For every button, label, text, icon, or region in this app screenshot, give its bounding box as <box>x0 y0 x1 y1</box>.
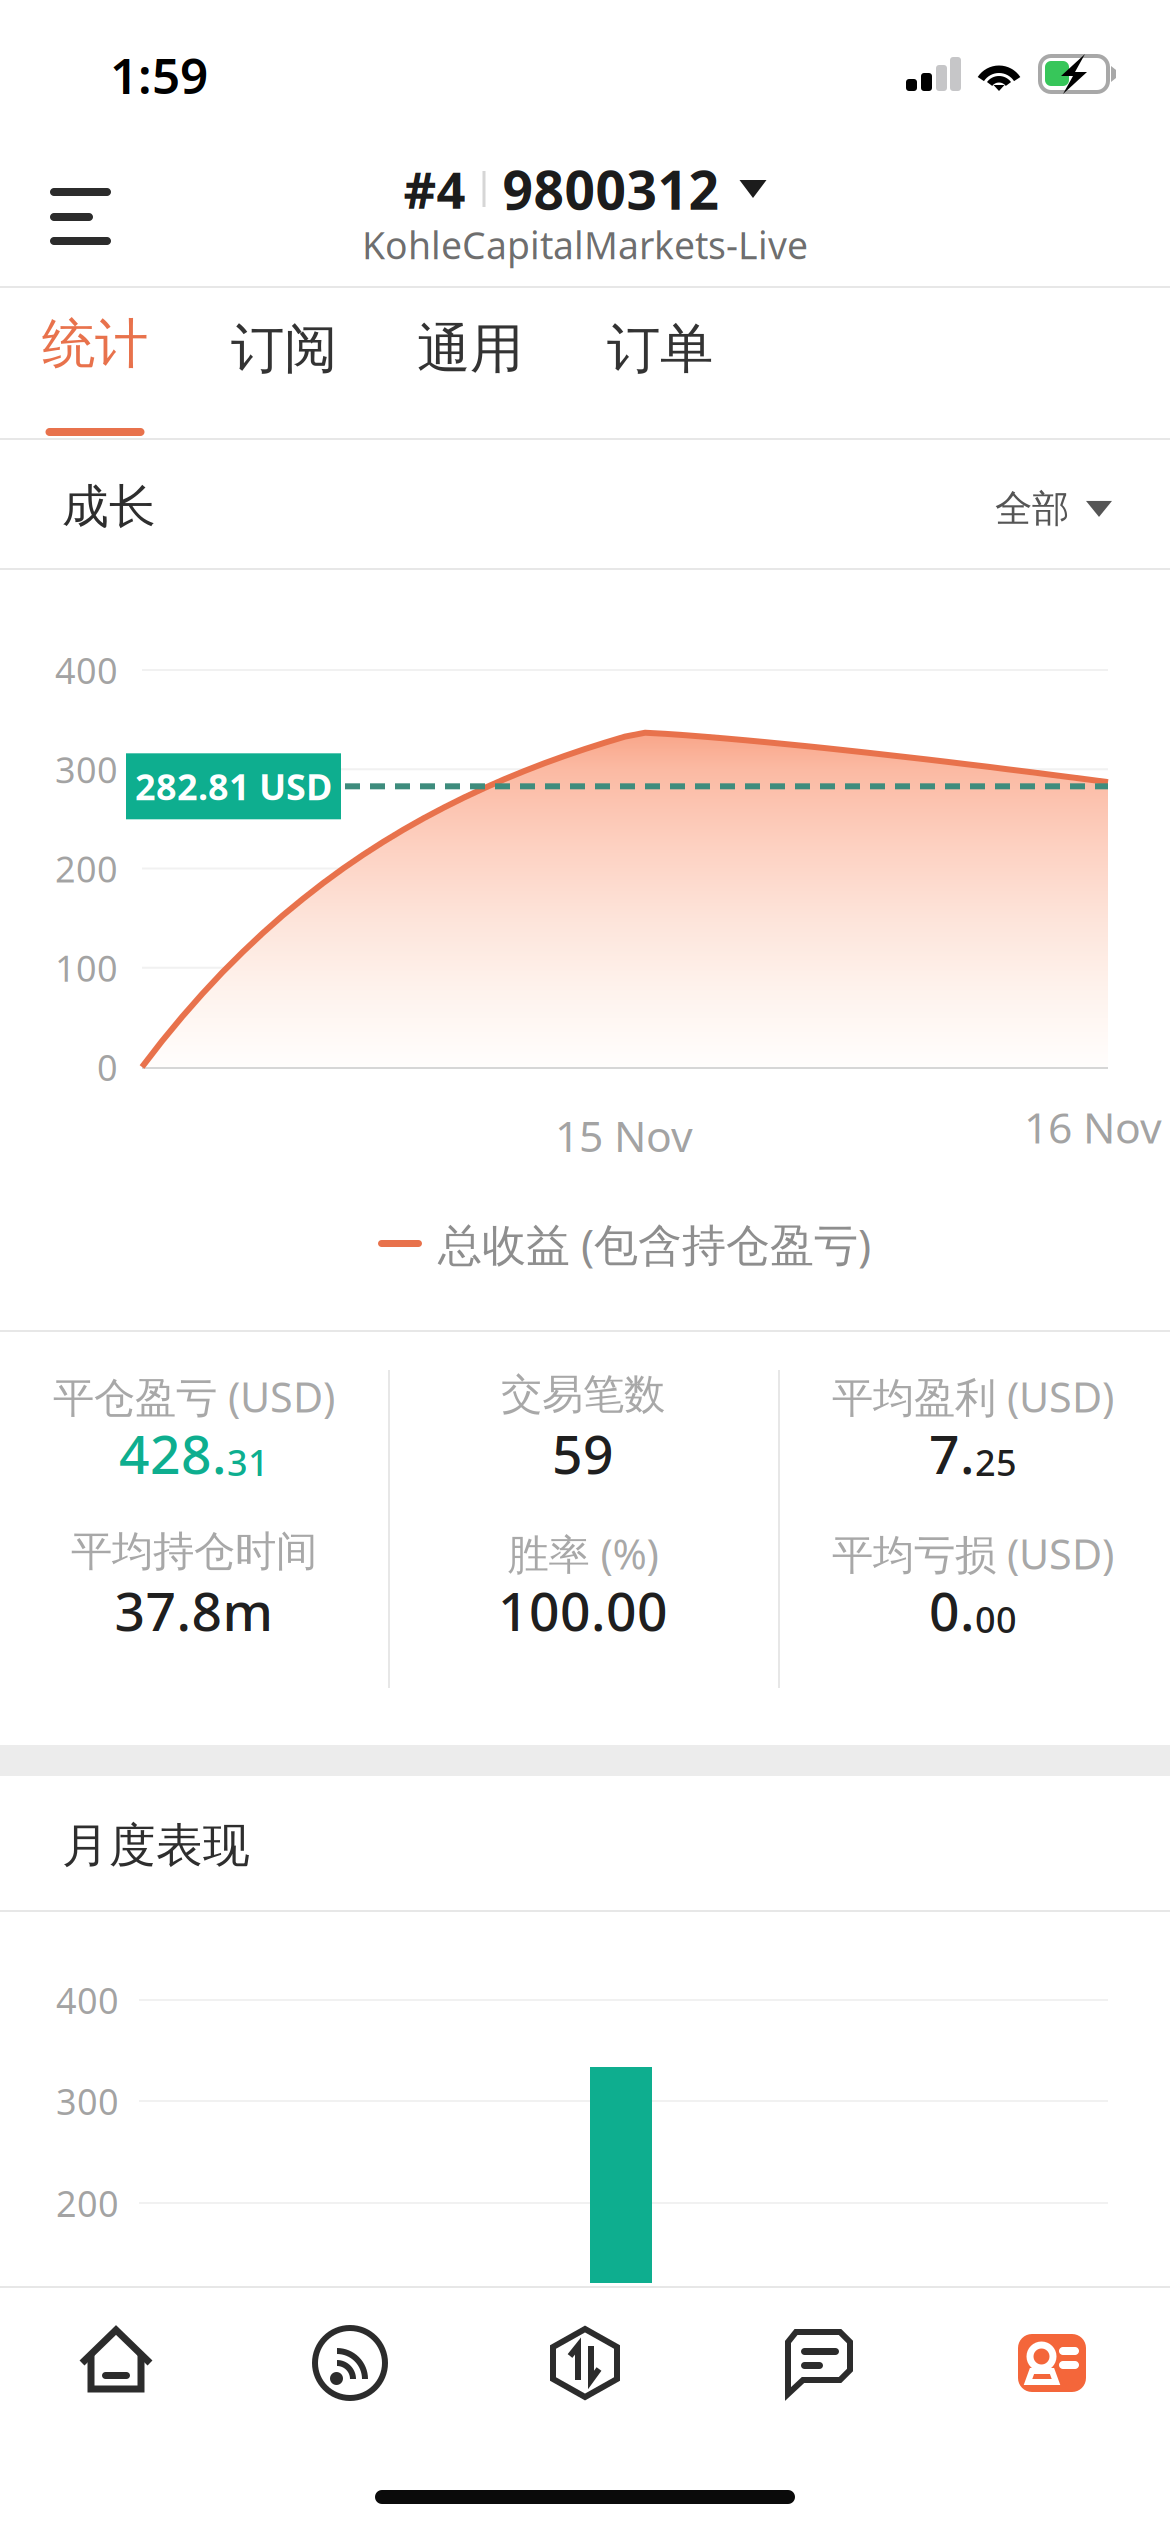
staticText: 订阅 <box>231 316 337 382</box>
staticText: KohleCapitalMarkets-Live <box>362 220 808 270</box>
button[interactable]: Account <box>1014 2326 1090 2400</box>
button[interactable]: 通用 <box>390 288 550 440</box>
staticText: 成长 <box>62 478 156 535</box>
button[interactable]: 全部 <box>995 474 1112 544</box>
staticText: 428. <box>119 1418 227 1489</box>
button[interactable]: 统计 <box>15 288 175 440</box>
staticText: 25 <box>975 1438 1017 1486</box>
staticText: 平仓盈亏 (USD) <box>53 1369 335 1424</box>
staticText: 37.8m <box>114 1575 273 1646</box>
staticText: 200 <box>56 2179 119 2227</box>
staticText: 统计 <box>42 311 148 377</box>
staticText: 9800312 <box>502 154 719 224</box>
staticText: 订单 <box>607 316 713 382</box>
staticText: 15 Nov <box>555 1107 693 1164</box>
staticText: 交易笔数 <box>501 1369 665 1420</box>
staticText: 400 <box>55 646 118 694</box>
staticText: 300 <box>55 745 118 793</box>
staticText: 月度表现 <box>62 1817 250 1874</box>
staticText: 31 <box>227 1438 269 1486</box>
staticText: 300 <box>56 2077 119 2125</box>
staticText: 平均亏损 (USD) <box>832 1526 1114 1581</box>
button[interactable]: 订单 <box>580 288 740 440</box>
staticText: 0 <box>97 1043 118 1091</box>
staticText: 平均持仓时间 <box>71 1526 317 1577</box>
staticText: 00 <box>975 1595 1017 1643</box>
staticText: 100.00 <box>498 1575 668 1646</box>
staticText: 平均盈利 (USD) <box>832 1369 1114 1424</box>
button[interactable]: Menu <box>26 164 150 282</box>
staticText: 全部 <box>995 486 1069 532</box>
button[interactable]: #4 <box>360 146 810 276</box>
staticText: #4 <box>403 155 465 223</box>
staticText: 总收益 (包含持仓盈亏) <box>438 1215 871 1273</box>
staticText: 59 <box>552 1418 614 1489</box>
staticText: 0. <box>929 1575 975 1646</box>
button[interactable]: Signals <box>312 2326 388 2400</box>
button[interactable]: Trade <box>547 2326 623 2400</box>
button[interactable]: Messages <box>780 2326 856 2400</box>
staticText: 400 <box>56 1976 119 2024</box>
staticText: 16 Nov <box>1024 1099 1162 1155</box>
staticText: 1:59 <box>110 42 208 107</box>
staticText: 200 <box>55 845 118 892</box>
staticText: 通用 <box>417 316 523 382</box>
button[interactable]: Home <box>78 2326 154 2400</box>
staticText: 胜率 (%) <box>507 1526 658 1581</box>
staticText: 282.81 USD <box>135 762 332 810</box>
staticText: 7. <box>929 1418 975 1489</box>
staticText: 100 <box>55 944 118 992</box>
button[interactable]: 订阅 <box>204 288 364 440</box>
